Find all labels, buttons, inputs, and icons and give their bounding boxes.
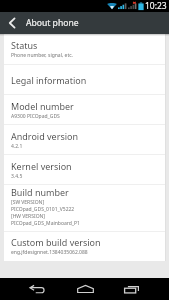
- staticText: PICOpad_GDS_Mainboard_P1: [11, 220, 80, 227]
- staticText: Android version: [11, 130, 79, 142]
- button[interactable]: Android version: [4, 125, 165, 154]
- staticText: A9300 PICOpad_GDS: [11, 113, 60, 120]
- staticText: Build number: [11, 186, 69, 198]
- button[interactable]: Custom build version: [4, 232, 165, 261]
- button[interactable]: Model number: [4, 95, 165, 124]
- button[interactable]: Status: [4, 34, 165, 64]
- button[interactable]: Navigate up: [0, 12, 23, 34]
- button[interactable]: Kernel version: [4, 155, 165, 184]
- staticText: Model number: [11, 100, 74, 112]
- staticText: 4.2.1: [11, 143, 23, 150]
- staticText: [SW VERSION]: [11, 199, 45, 206]
- staticText: [HW VERSION]: [11, 213, 45, 220]
- staticText: Custom build version: [11, 236, 101, 248]
- button[interactable]: Back: [23, 278, 51, 300]
- button[interactable]: Home: [71, 278, 99, 300]
- staticText: 10:23: [145, 0, 167, 12]
- staticText: Kernel version: [11, 160, 72, 172]
- staticText: Phone number, signal, etc.: [11, 52, 73, 59]
- staticText: About phone: [26, 17, 79, 29]
- staticText: 3.4.5: [11, 173, 23, 180]
- staticText: PICOpad_GDS_0101_V5222: [11, 206, 75, 213]
- staticText: eng.jfdesignnet.1384035062.088: [11, 249, 88, 256]
- button[interactable]: Recent apps: [117, 278, 145, 300]
- button[interactable]: Legal information: [4, 65, 165, 94]
- button[interactable]: Build number: [4, 185, 165, 231]
- staticText: Status: [11, 39, 38, 51]
- staticText: Legal information: [11, 74, 87, 86]
